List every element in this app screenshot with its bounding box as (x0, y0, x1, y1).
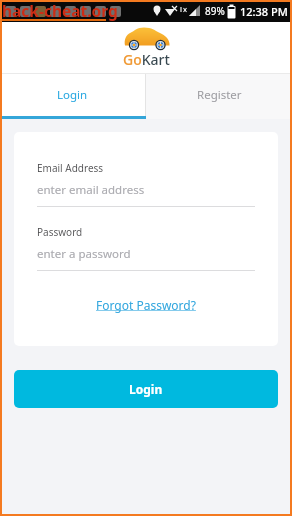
button[interactable]: Login (0, 74, 145, 116)
staticText: GoKart (123, 50, 170, 69)
staticText: enter a password (37, 246, 131, 262)
button[interactable]: Login (14, 370, 278, 408)
staticText: 12:38 PM (240, 4, 288, 19)
staticText: 89% (205, 4, 225, 18)
staticText: hack-cheat.org (2, 0, 118, 21)
staticText: Login (57, 87, 88, 103)
staticText: Login (129, 381, 163, 397)
staticText: Register (197, 87, 242, 103)
button[interactable]: Register (146, 74, 292, 116)
button[interactable]: Forgot Password? (96, 297, 196, 313)
staticText: enter email address (37, 182, 145, 198)
staticText: Email Address (37, 161, 104, 175)
staticText: Password (37, 225, 83, 239)
